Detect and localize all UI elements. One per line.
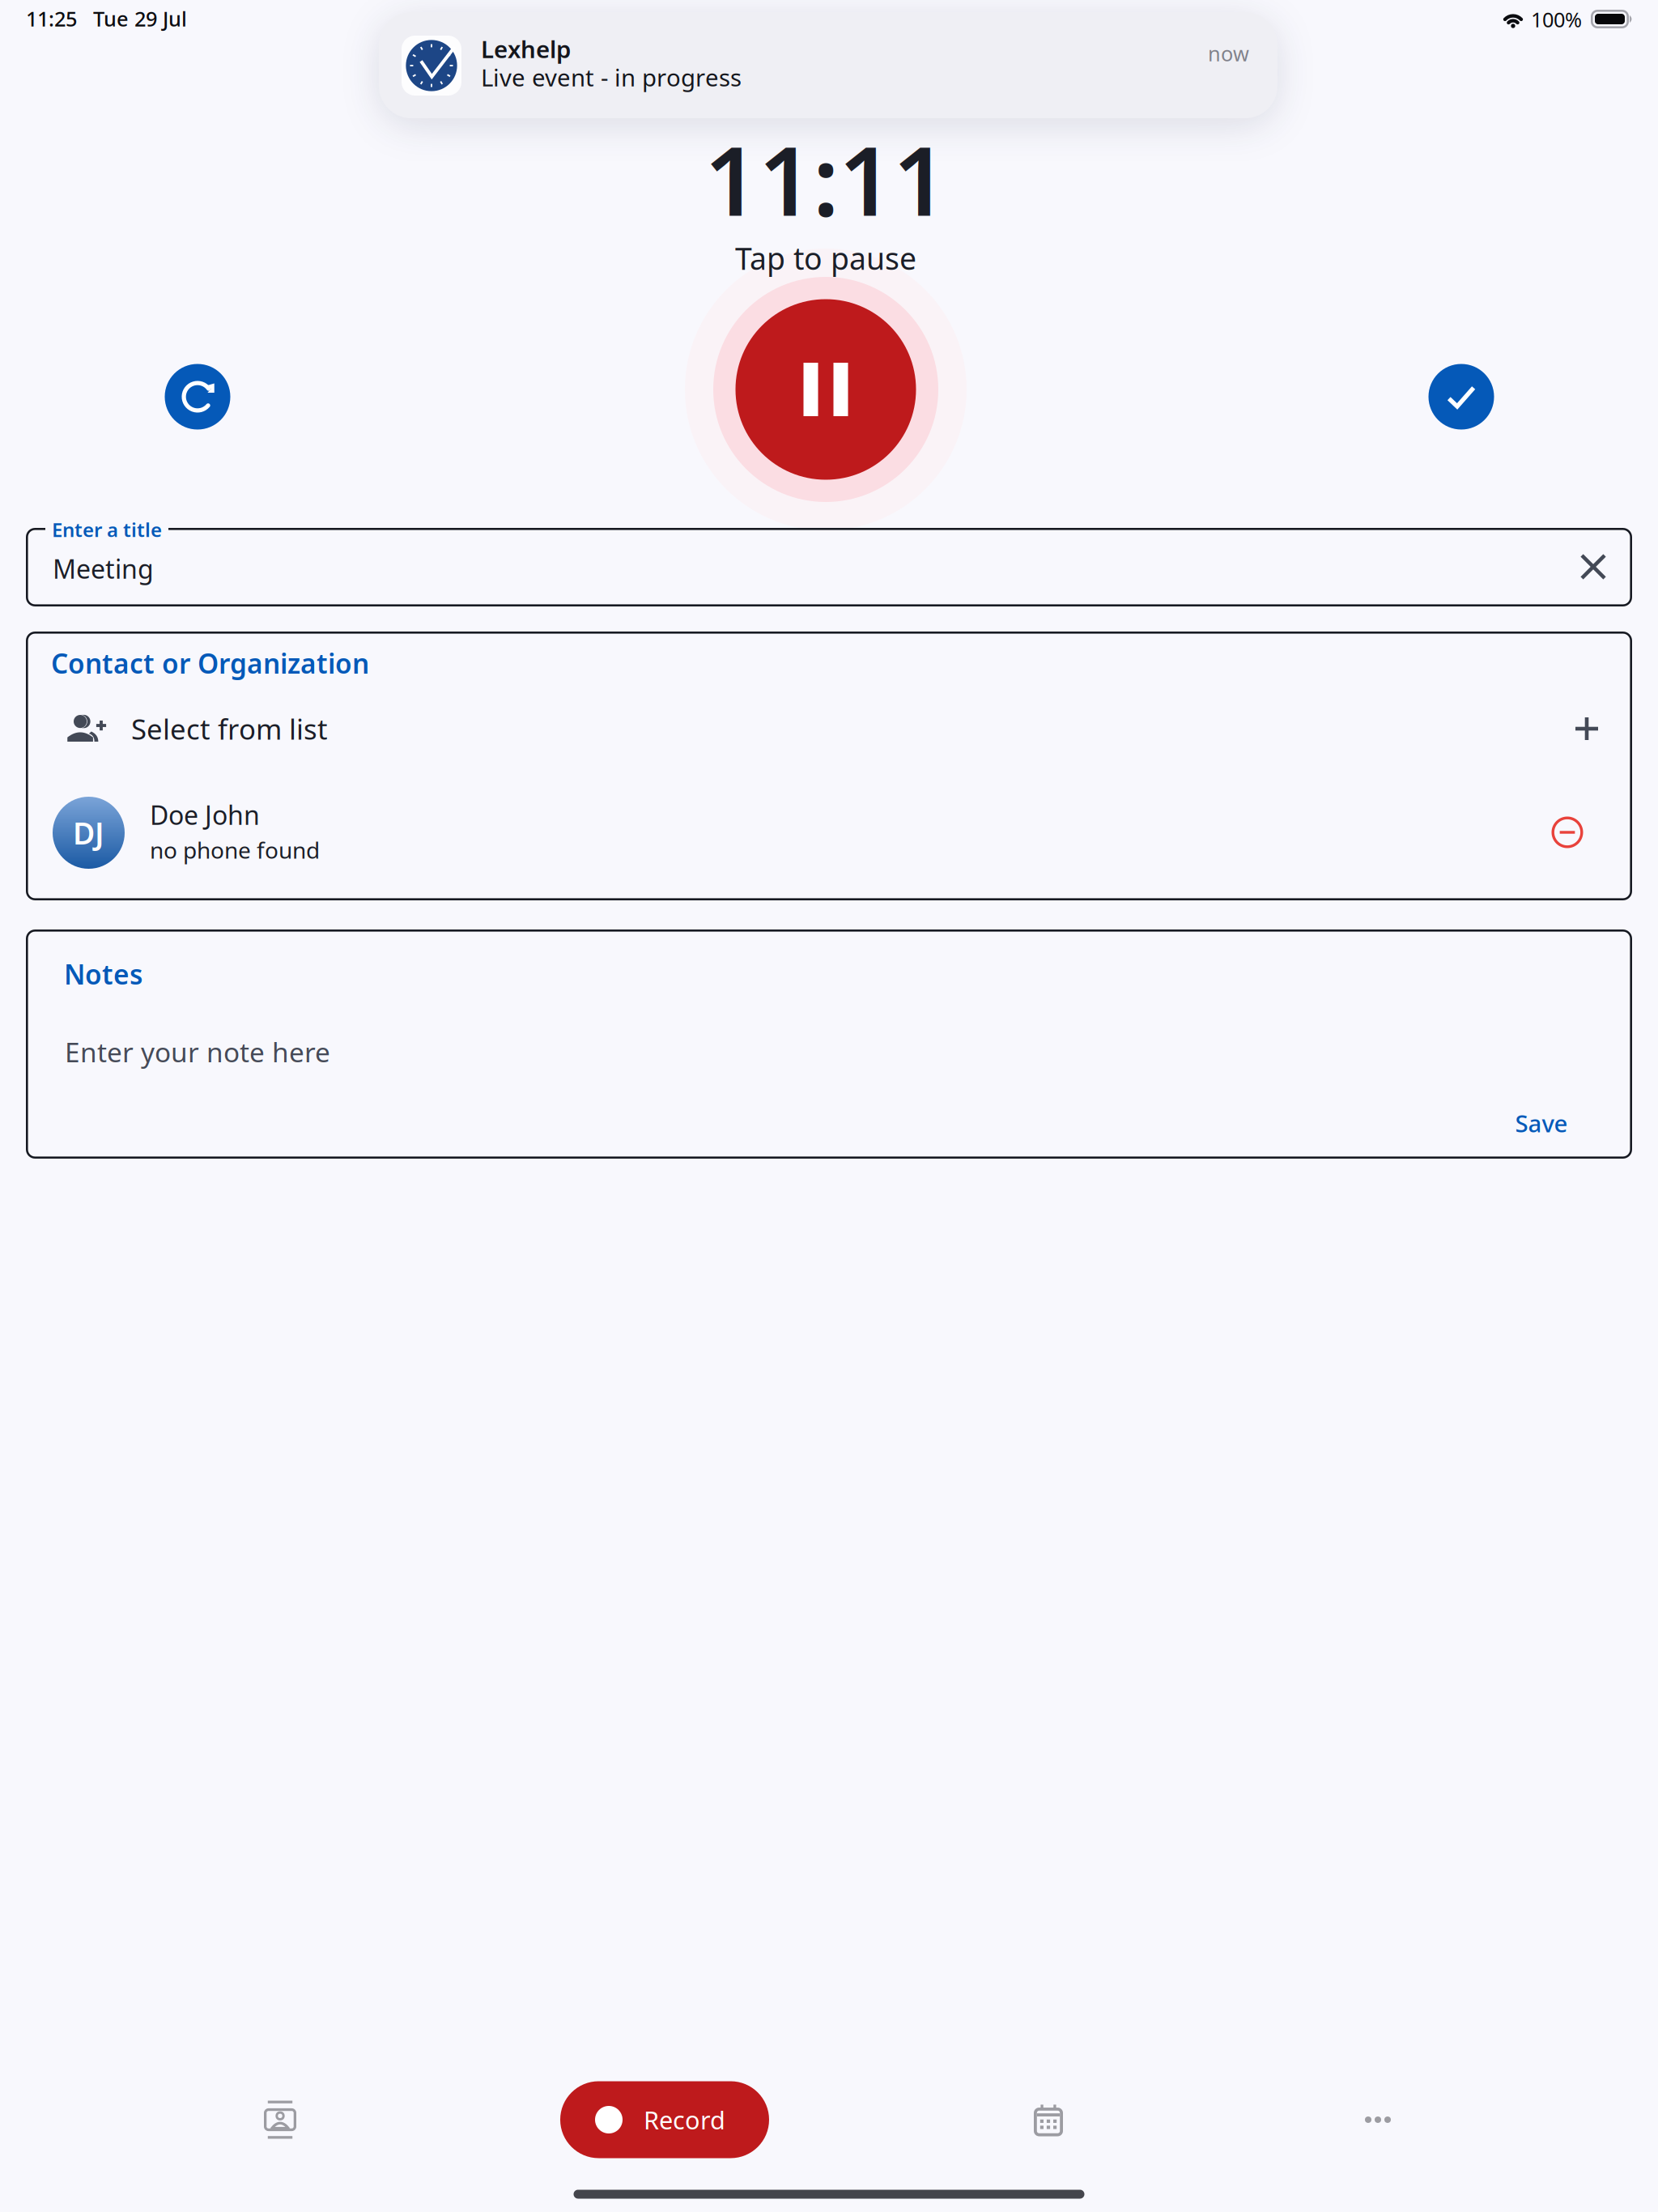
- staticText: Notes: [64, 956, 142, 992]
- button[interactable]: Enter your note here: [66, 1006, 1592, 1078]
- staticText: no phone found: [150, 835, 320, 865]
- staticText: Doe John: [150, 798, 260, 832]
- button[interactable]: Restart recording: [165, 364, 230, 430]
- staticText: Tue 29 Jul: [93, 5, 187, 32]
- button[interactable]: Contacts: [232, 2075, 329, 2164]
- staticText: Lexhelp: [481, 33, 571, 65]
- button[interactable]: Calendar: [1000, 2075, 1097, 2164]
- staticText: Contact or Organization: [51, 645, 369, 681]
- staticText: 11:25: [26, 5, 77, 32]
- staticText: 11:11: [704, 116, 947, 242]
- staticText: Select from list: [131, 710, 328, 747]
- button[interactable]: Save: [1502, 1097, 1581, 1149]
- button[interactable]: More options: [1329, 2075, 1426, 2164]
- staticText: Meeting: [53, 551, 154, 586]
- staticText: 100%: [1531, 6, 1582, 33]
- button[interactable]: Finish recording: [1428, 364, 1494, 430]
- button[interactable]: Select from list: [28, 696, 1630, 761]
- staticText: Tap to pause: [735, 238, 916, 278]
- staticText: Live event - in progress: [481, 62, 742, 93]
- button[interactable]: DJ: [28, 788, 1630, 877]
- staticText: Record: [644, 2103, 725, 2136]
- staticText: DJ: [73, 813, 104, 853]
- button[interactable]: Pause recording: [685, 249, 967, 530]
- button[interactable]: Remove contact: [1541, 806, 1593, 858]
- staticText: now: [1208, 40, 1249, 67]
- staticText: Enter a title: [52, 517, 162, 542]
- button[interactable]: Record: [560, 2081, 769, 2158]
- button[interactable]: Meeting: [26, 528, 1632, 606]
- button[interactable]: Clear title: [1568, 542, 1618, 592]
- staticText: Enter your note here: [65, 1034, 330, 1070]
- staticText: Save: [1515, 1107, 1568, 1139]
